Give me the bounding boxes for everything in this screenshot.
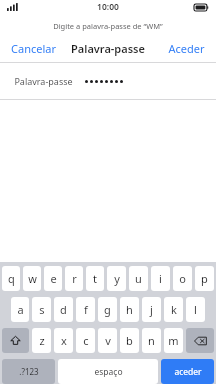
button[interactable]: d — [54, 297, 73, 322]
button[interactable]: Shift — [2, 328, 29, 353]
button[interactable]: Backspace — [186, 328, 214, 353]
staticText: aceder — [174, 366, 202, 378]
staticText: d — [60, 302, 67, 317]
button[interactable]: g — [98, 297, 117, 322]
staticText: s — [39, 302, 45, 317]
staticText: e — [50, 271, 57, 286]
button[interactable]: y — [107, 266, 126, 291]
staticText: f — [84, 302, 88, 317]
staticText: k — [171, 302, 177, 317]
button[interactable]: b — [120, 328, 139, 353]
staticText: i — [159, 271, 162, 286]
staticText: espaço — [94, 366, 123, 378]
button[interactable]: Cancelar — [8, 38, 59, 59]
staticText: h — [126, 302, 133, 317]
staticText: Palavra-passe — [71, 41, 145, 56]
button[interactable]: q — [2, 266, 20, 291]
button[interactable]: m — [164, 328, 183, 353]
button[interactable]: t — [86, 266, 104, 291]
staticText: Cancelar — [11, 41, 56, 56]
button[interactable]: .?123 — [2, 359, 55, 384]
staticText: x — [61, 333, 67, 348]
button[interactable]: Palavra-passe — [0, 63, 216, 99]
button[interactable]: c — [76, 328, 95, 353]
staticText: 10:00 — [97, 1, 119, 13]
button[interactable]: a — [11, 297, 29, 322]
staticText: g — [104, 302, 111, 317]
button[interactable]: p — [195, 266, 214, 291]
button[interactable]: espaço — [58, 359, 158, 384]
button[interactable]: i — [151, 266, 170, 291]
staticText: a — [17, 302, 24, 317]
staticText: v — [105, 333, 111, 348]
button[interactable]: w — [23, 266, 41, 291]
staticText: t — [93, 271, 97, 286]
button[interactable]: v — [98, 328, 117, 353]
staticText: b — [126, 333, 133, 348]
button[interactable]: h — [120, 297, 139, 322]
staticText: p — [201, 271, 208, 286]
staticText: o — [179, 271, 186, 286]
button[interactable]: z — [32, 328, 51, 353]
staticText: w — [28, 271, 37, 286]
button[interactable]: e — [44, 266, 62, 291]
staticText: z — [39, 333, 45, 348]
staticText: r — [72, 271, 77, 286]
staticText: .?123 — [19, 366, 39, 377]
button[interactable]: f — [76, 297, 95, 322]
button[interactable]: n — [142, 328, 161, 353]
button[interactable]: Aceder — [165, 38, 208, 59]
button[interactable]: u — [129, 266, 148, 291]
staticText: u — [135, 271, 142, 286]
staticText: Aceder — [168, 41, 205, 56]
button[interactable]: x — [54, 328, 73, 353]
staticText: q — [8, 271, 15, 286]
button[interactable]: k — [164, 297, 183, 322]
button[interactable]: r — [65, 266, 83, 291]
staticText: n — [148, 333, 155, 348]
button[interactable]: aceder — [161, 359, 214, 384]
button[interactable]: s — [32, 297, 51, 322]
staticText: l — [194, 302, 197, 317]
staticText: m — [168, 333, 179, 348]
button[interactable]: o — [173, 266, 192, 291]
staticText: Digite a palavra-passe de “WM” — [53, 21, 163, 31]
button[interactable]: l — [186, 297, 205, 322]
staticText: y — [114, 271, 120, 286]
staticText: Palavra-passe — [14, 75, 73, 87]
button[interactable]: j — [142, 297, 161, 322]
staticText: c — [83, 333, 89, 348]
staticText: j — [150, 302, 153, 317]
